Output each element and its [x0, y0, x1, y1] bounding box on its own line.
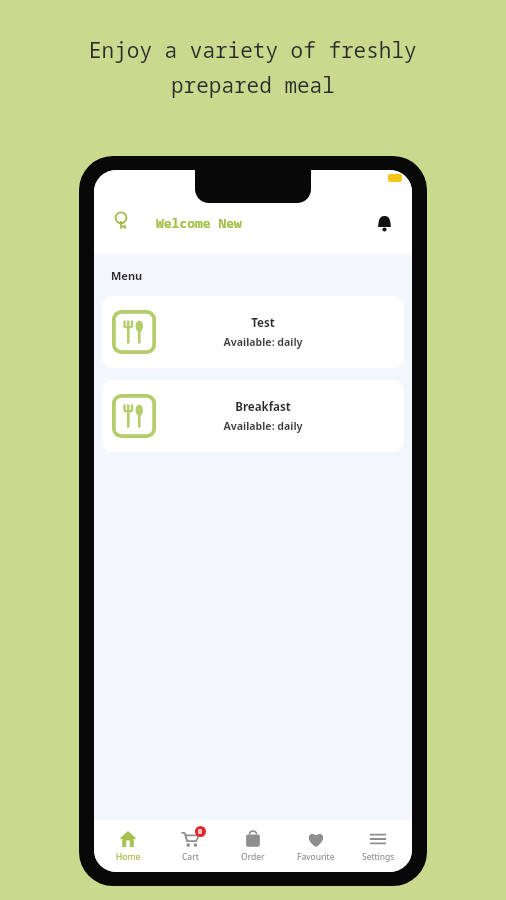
staticText: Welcome New [156, 214, 242, 232]
staticText: Enjoy a variety of freshly [89, 36, 417, 65]
button[interactable]: Order [224, 826, 282, 867]
staticText: Breakfast [235, 399, 291, 415]
staticText: Favourite [297, 851, 335, 863]
staticText: Cart [182, 851, 199, 863]
button[interactable]: Settings [349, 826, 407, 867]
staticText: Available: daily [223, 419, 303, 433]
button[interactable]: Test [102, 296, 404, 368]
staticText: Settings [362, 851, 395, 863]
staticText: Test [251, 315, 275, 331]
staticText: Order [241, 851, 265, 863]
button[interactable]: App logo [108, 210, 134, 236]
staticText: Home [116, 851, 141, 863]
staticText: prepared meal [171, 71, 335, 100]
button[interactable]: Notifications [370, 209, 398, 237]
staticText: Menu [111, 268, 143, 283]
staticText: 0 [198, 827, 203, 837]
staticText: Available: daily [223, 335, 303, 349]
button[interactable]: 0 [161, 826, 219, 867]
button[interactable]: Favourite [287, 826, 345, 867]
button[interactable]: Breakfast [102, 380, 404, 452]
button[interactable]: Home [99, 826, 157, 867]
